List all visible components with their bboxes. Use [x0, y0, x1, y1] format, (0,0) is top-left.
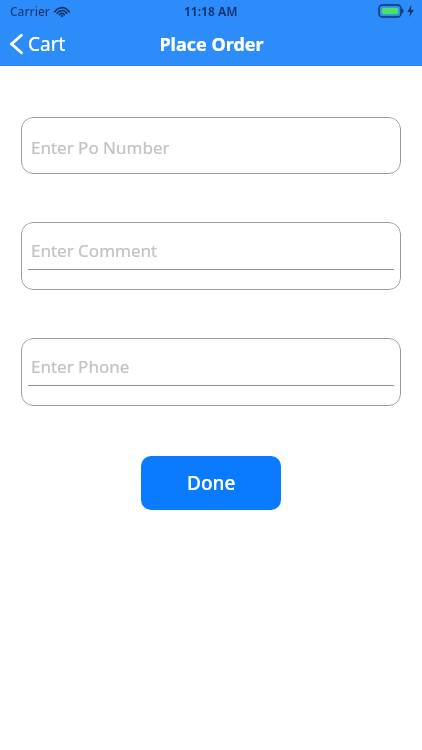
button[interactable]: Done [141, 456, 281, 510]
staticText: Place Order [159, 32, 264, 57]
button[interactable]: Enter Po Number [21, 117, 401, 174]
staticText: Enter Phone [31, 355, 130, 378]
button[interactable]: Enter Comment [21, 222, 401, 290]
button[interactable]: Cart [0, 25, 78, 63]
staticText: Enter Comment [31, 239, 158, 262]
staticText: Cart [28, 31, 66, 57]
staticText: Done [187, 470, 236, 496]
button[interactable]: Enter Phone [21, 338, 401, 406]
staticText: Enter Po Number [31, 136, 170, 159]
staticText: Carrier [10, 3, 50, 19]
staticText: 11:18 AM [184, 3, 238, 19]
